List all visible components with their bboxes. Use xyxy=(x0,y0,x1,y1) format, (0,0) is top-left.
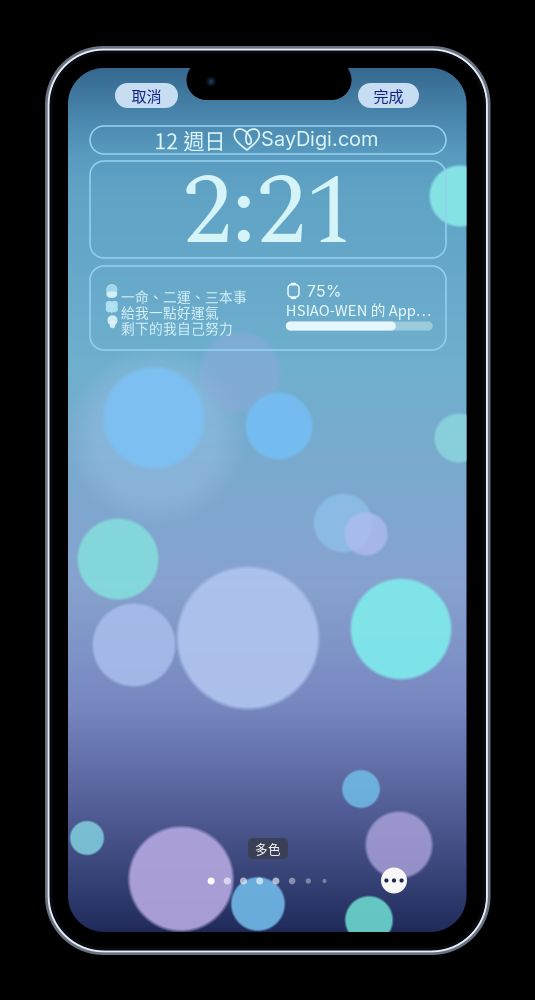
staticText: 給我一點好運氣 xyxy=(121,302,219,322)
button[interactable]: More options xyxy=(381,867,407,893)
staticText: HSIAO-WEN 的 App… xyxy=(286,299,432,320)
button[interactable]: 一命、二運、三本事 xyxy=(90,266,446,350)
staticText: 2:21 xyxy=(182,137,354,288)
button[interactable]: 完成 xyxy=(358,83,419,108)
staticText: 剩下的我自己努力 xyxy=(121,318,233,338)
button[interactable]: 取消 xyxy=(115,83,178,108)
staticText: 75% xyxy=(307,282,341,301)
button[interactable]: 2:21 xyxy=(90,161,446,258)
button[interactable]: 12 週日 xyxy=(90,126,446,154)
staticText: 取消 xyxy=(131,85,161,106)
staticText: 多色 xyxy=(255,839,281,857)
staticText: SayDigi.com xyxy=(261,126,378,151)
staticText: 一命、二運、三本事 xyxy=(121,286,247,306)
staticText: 完成 xyxy=(373,85,403,106)
staticText: 12 週日 xyxy=(154,124,225,155)
